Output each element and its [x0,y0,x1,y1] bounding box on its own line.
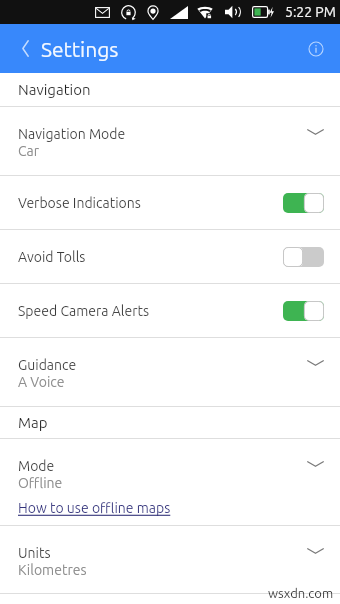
staticText: Car [18,143,40,159]
staticText: Navigation Mode [18,126,126,142]
staticText: 5:22 PM [285,4,336,20]
staticText: Map [18,414,48,431]
button[interactable]: How to use offline maps [18,500,171,516]
staticText: Kilometres [18,562,87,578]
button[interactable]: Speed Camera Alerts [0,284,340,338]
button[interactable]: Avoid Tolls [0,230,340,284]
staticText: Units [18,545,51,561]
button[interactable]: On [283,193,324,213]
staticText: wsxdn.com [268,586,334,601]
staticText: Speed Camera Alerts [18,303,283,319]
button[interactable]: Off [283,247,324,267]
staticText: Mode [18,458,55,474]
button[interactable]: Mode [0,439,340,526]
staticText: Avoid Tolls [18,249,283,265]
staticText: Navigation [18,81,91,98]
staticText: Offline [18,475,63,491]
staticText: Settings [41,37,119,61]
button[interactable]: Navigation Mode [0,107,340,176]
staticText: Guidance [18,357,77,373]
button[interactable]: On [283,301,324,321]
button[interactable]: Verbose Indications [0,176,340,230]
button[interactable]: Back [0,24,41,73]
staticText: Verbose Indications [18,195,283,211]
button[interactable]: Info [296,24,340,73]
button[interactable]: Guidance [0,338,340,407]
staticText: A Voice [18,374,65,390]
button[interactable]: Units [0,526,340,594]
